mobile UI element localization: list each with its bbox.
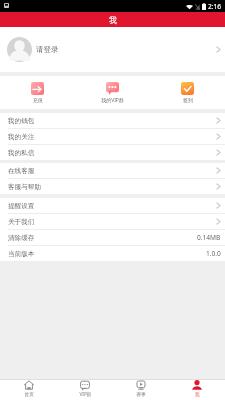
button[interactable]: 当前版本	[0, 246, 225, 261]
staticText: 我	[109, 15, 117, 25]
button[interactable]: 我的私信	[0, 145, 225, 160]
staticText: 首页	[24, 391, 34, 397]
staticText: 2:16	[208, 2, 222, 11]
staticText: 在线客服	[8, 167, 35, 175]
staticText: 1.0.0	[206, 249, 221, 258]
button[interactable]: 我	[169, 380, 225, 400]
staticText: 我的私信	[8, 149, 35, 157]
button[interactable]: 提醒设置	[0, 198, 225, 213]
button[interactable]: 充值	[0, 79, 75, 106]
button[interactable]: 请登录	[0, 27, 225, 72]
other: 签到	[181, 82, 194, 95]
staticText: 提醒设置	[8, 202, 35, 210]
button[interactable]: 客服与帮助	[0, 179, 225, 194]
button[interactable]: 关于我们	[0, 214, 225, 229]
staticText: 清除缓存	[8, 234, 35, 242]
button[interactable]: 我的VIP群	[75, 79, 150, 107]
staticText: 当前版本	[8, 250, 35, 258]
staticText: 关于我们	[8, 218, 35, 226]
staticText: 签到	[183, 97, 193, 103]
button[interactable]: 我的关注	[0, 129, 225, 144]
staticText: 我的关注	[8, 133, 35, 141]
button[interactable]: 首页	[0, 380, 57, 400]
staticText: VIP群	[79, 391, 92, 398]
staticText: 0.14MB	[197, 233, 221, 242]
button[interactable]: 清除缓存	[0, 230, 225, 245]
button[interactable]: 在线客服	[0, 163, 225, 178]
button[interactable]: VIP群	[57, 380, 113, 400]
other: 我的VIP群	[106, 82, 119, 95]
staticText: 赛事	[136, 391, 146, 397]
staticText: 请登录	[36, 45, 59, 54]
staticText: 客服与帮助	[8, 183, 41, 191]
button[interactable]: 签到	[150, 79, 225, 106]
staticText: 充值	[33, 97, 43, 103]
staticText: 我的VIP群	[101, 97, 124, 104]
other: 充值	[31, 82, 44, 95]
staticText: 我	[195, 391, 200, 397]
button[interactable]: 赛事	[113, 380, 169, 400]
staticText: 我的钱包	[8, 117, 35, 125]
button[interactable]: 我的钱包	[0, 113, 225, 128]
